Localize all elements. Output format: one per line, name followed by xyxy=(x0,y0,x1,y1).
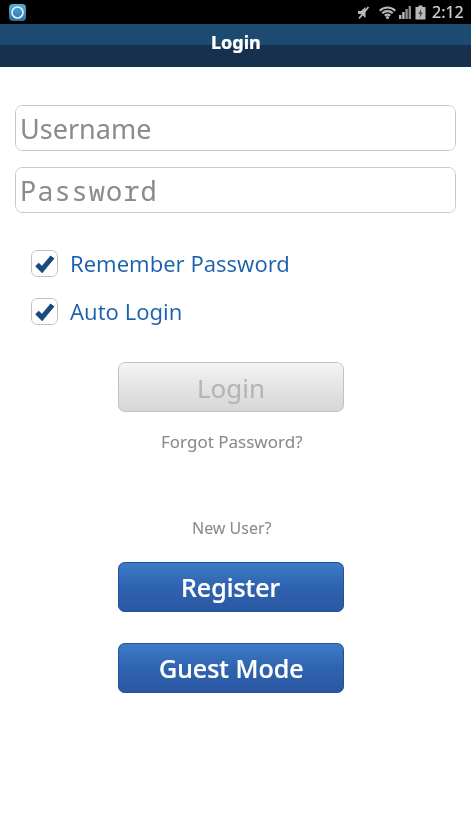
staticText: Username xyxy=(20,110,152,147)
button[interactable]: Remember Password xyxy=(31,248,290,278)
staticText: Guest Mode xyxy=(159,651,304,685)
button[interactable]: Auto Login xyxy=(31,296,183,326)
staticText: New User? xyxy=(192,517,272,539)
staticText: 2:12 xyxy=(432,1,464,23)
button[interactable]: Guest Mode xyxy=(118,643,344,693)
button[interactable]: Username xyxy=(15,105,456,151)
button[interactable]: Password xyxy=(15,167,456,213)
staticText: Remember Password xyxy=(70,248,290,278)
staticText: Auto Login xyxy=(70,296,183,326)
button[interactable]: Register xyxy=(118,562,344,612)
button[interactable]: Login xyxy=(118,362,344,412)
staticText: Login xyxy=(211,30,261,55)
staticText: Register xyxy=(181,570,281,604)
staticText: Forgot Password? xyxy=(161,430,303,453)
staticText: Login xyxy=(197,370,266,405)
staticText: Password xyxy=(20,172,158,209)
button[interactable]: Forgot Password? xyxy=(157,426,307,457)
